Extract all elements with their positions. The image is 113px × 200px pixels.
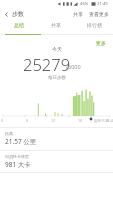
staticText: 距离 — [5, 131, 13, 136]
staticText: 今天 — [52, 46, 62, 52]
staticText: 步数 — [12, 10, 24, 18]
button[interactable]: 总结 — [0, 21, 37, 29]
button[interactable]: 共享 — [37, 21, 75, 29]
staticText: 更多 — [96, 40, 106, 46]
staticText: 查看更多 — [89, 11, 109, 17]
staticText: 46% — [80, 1, 89, 7]
staticText: 21.57 公里 — [5, 137, 37, 146]
staticText: /6000 — [66, 63, 81, 70]
button[interactable]: 查看更多 — [86, 11, 113, 17]
staticText: 21:49 — [97, 1, 108, 7]
staticText: 总结 — [14, 22, 24, 28]
staticText: 0 — [1, 118, 4, 123]
staticText: 共享 — [51, 22, 61, 28]
button[interactable]: 距离 — [5, 131, 37, 146]
staticText: 排行榜 — [87, 22, 102, 28]
staticText: 已消耗卡路里 — [5, 154, 29, 159]
staticText: 共享 — [73, 11, 83, 17]
staticText: 12 — [51, 118, 56, 123]
button[interactable]: 更多 — [91, 38, 113, 48]
button[interactable]: Back — [0, 8, 12, 20]
button[interactable]: 排行榜 — [75, 21, 113, 29]
button[interactable]: 共享 — [70, 11, 86, 17]
staticText: 每日步数 — [48, 75, 66, 81]
staticText: 18 — [78, 118, 83, 123]
staticText: 25279 — [23, 53, 71, 75]
staticText: 更新于 21:45 — [94, 118, 113, 123]
button[interactable]: 已消耗卡路里 — [5, 154, 31, 169]
staticText: 981 大卡 — [5, 160, 31, 169]
staticText: 6 — [26, 118, 29, 123]
staticText: 24 — [105, 118, 110, 123]
